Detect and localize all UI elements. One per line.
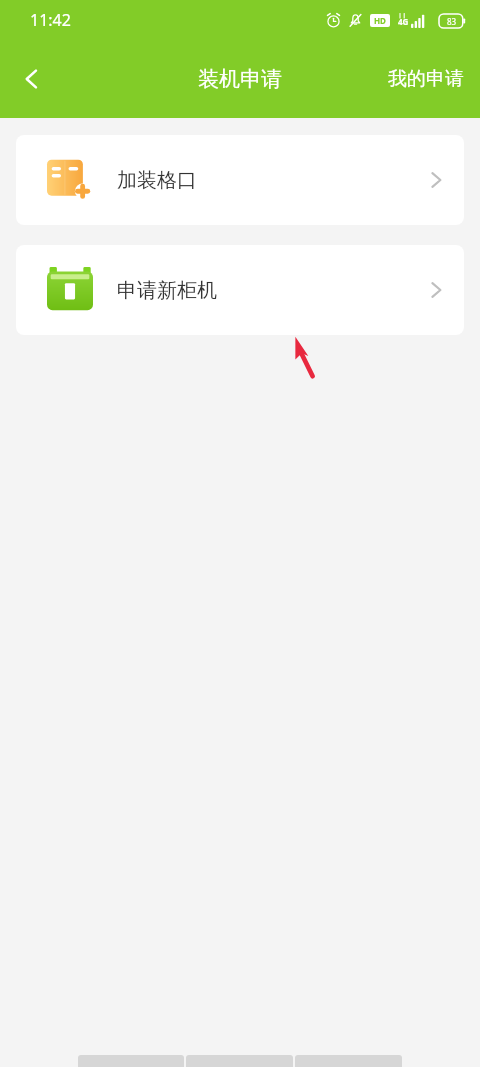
staticText: HD [374, 15, 386, 26]
staticText: 申请新柜机 [117, 278, 217, 303]
button[interactable]: 申请新柜机 [16, 245, 464, 335]
staticText: 4G [398, 16, 409, 27]
staticText: 83 [447, 16, 457, 27]
staticText: 加装格口 [117, 168, 197, 193]
staticText: 装机申请 [198, 66, 282, 92]
button[interactable]: Back [8, 55, 56, 103]
staticText: 11:42 [30, 9, 71, 31]
button[interactable]: 我的申请 [372, 57, 480, 101]
button[interactable]: 加装格口 [16, 135, 464, 225]
staticText: 我的申请 [388, 67, 464, 91]
